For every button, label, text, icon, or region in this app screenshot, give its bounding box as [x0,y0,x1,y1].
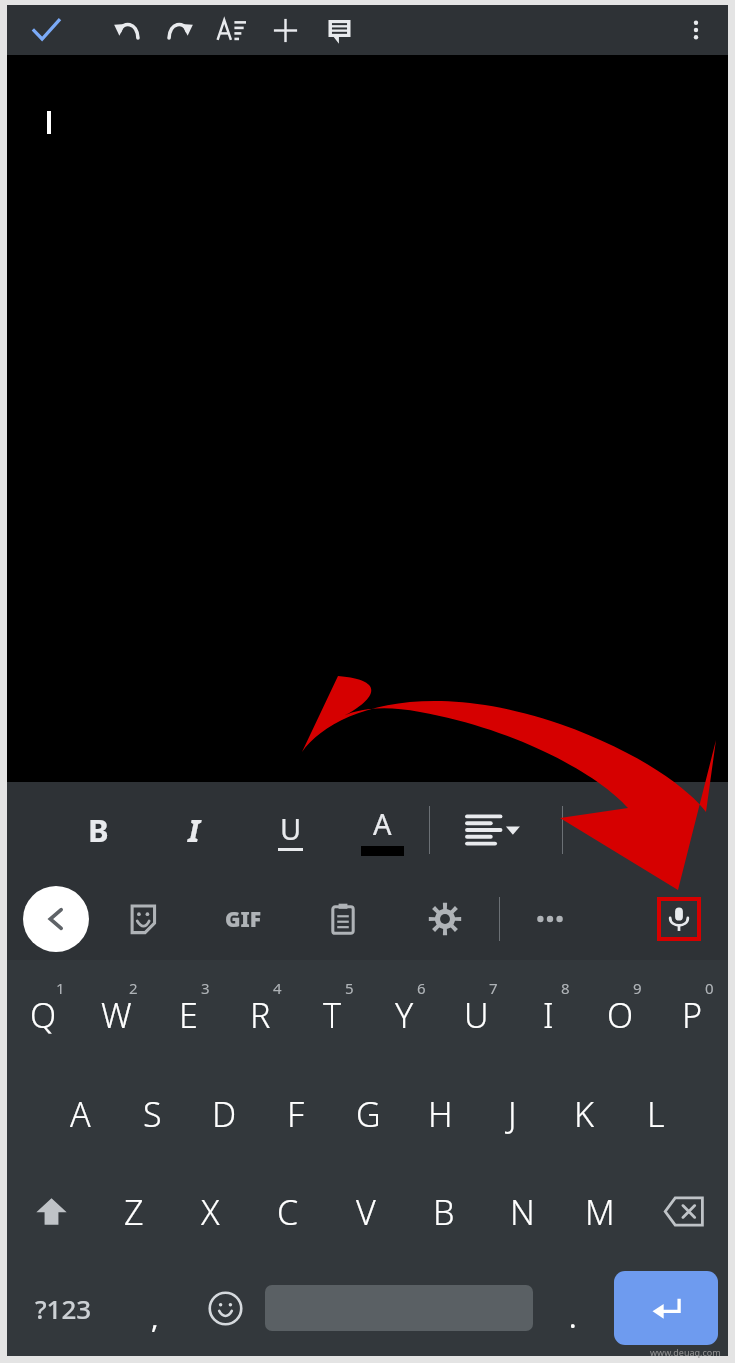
staticText: N [510,1189,535,1235]
button[interactable]: W [80,960,152,1064]
button[interactable]: GIF [215,891,271,947]
staticText: , [151,1298,159,1336]
staticText: F [287,1091,305,1137]
button[interactable]: K [548,1064,620,1163]
staticText: 8 [561,978,570,998]
staticText: Z [124,1189,144,1235]
button[interactable]: V [327,1163,405,1260]
button[interactable]: B [67,799,129,861]
button[interactable]: Done [21,5,71,55]
button[interactable]: F [260,1064,332,1163]
button[interactable]: G [332,1064,404,1163]
staticText: M [585,1189,615,1235]
button[interactable]: S [116,1064,188,1163]
button[interactable]: H [404,1064,476,1163]
staticText: GIF [225,905,262,934]
staticText: T [323,992,342,1038]
staticText: B [433,1189,455,1235]
staticText: P [682,992,703,1038]
staticText: X [201,1189,220,1235]
button[interactable]: P [656,960,728,1064]
button[interactable]: Text formatting [207,6,255,54]
staticText: S [143,1091,162,1137]
button[interactable]: D [188,1064,260,1163]
staticText: 6 [417,978,426,998]
staticText: I [543,992,554,1038]
staticText: I [188,809,200,851]
staticText: A [70,1091,91,1137]
button[interactable]: . [537,1260,608,1356]
staticText: 5 [345,978,354,998]
staticText: 3 [201,978,210,998]
button[interactable]: B [405,1163,483,1260]
button[interactable]: Emoji [190,1260,261,1356]
button[interactable]: T [296,960,368,1064]
button[interactable]: Voice input [661,901,697,937]
staticText: L [647,1091,665,1137]
button[interactable]: Backspace [639,1163,728,1260]
button[interactable]: J [476,1064,548,1163]
button[interactable]: More keyboard options [522,891,578,947]
staticText: B [88,809,109,851]
staticText: A [373,804,392,843]
staticText: U [464,992,489,1038]
button[interactable]: ?123 [7,1260,119,1356]
staticText: V [356,1189,376,1235]
staticText: W [101,992,132,1038]
button[interactable]: Shift [7,1163,95,1260]
staticText: R [250,992,271,1038]
staticText: www.deuaq.com [650,1346,721,1358]
button[interactable]: C [249,1163,327,1260]
button[interactable]: M [561,1163,639,1260]
staticText: U [280,809,302,848]
staticText: 1 [56,978,65,998]
staticText: C [277,1189,299,1235]
button[interactable]: X [172,1163,249,1260]
staticText: 7 [489,978,498,998]
button[interactable]: Enter [614,1271,718,1345]
button[interactable]: U [440,960,512,1064]
staticText: K [574,1091,594,1137]
button[interactable]: Stickers [115,891,171,947]
staticText: H [428,1091,453,1137]
button[interactable]: A [44,1064,116,1163]
button[interactable]: Comments [315,6,363,54]
button[interactable]: U [259,799,321,861]
staticText: G [356,1091,381,1137]
button[interactable]: Redo [155,6,203,54]
staticText: . [569,1298,577,1336]
button[interactable]: I [163,799,225,861]
button[interactable]: More options [674,8,718,52]
button[interactable]: Settings [417,891,473,947]
button[interactable]: I [512,960,584,1064]
staticText: ?123 [35,1291,92,1326]
button[interactable]: Back [23,886,89,952]
staticText: J [508,1091,517,1137]
button[interactable]: R [224,960,296,1064]
button[interactable]: E [152,960,224,1064]
staticText: O [607,992,634,1038]
staticText: 9 [633,978,642,998]
staticText: 4 [273,978,282,998]
button[interactable]: Clipboard [315,891,371,947]
button[interactable]: N [483,1163,561,1260]
button[interactable]: Undo [103,6,151,54]
button[interactable]: L [620,1064,692,1163]
staticText: E [179,992,198,1038]
button[interactable]: Q [7,960,80,1064]
staticText: Y [395,992,414,1038]
staticText: 0 [705,978,714,998]
button[interactable]: , [119,1260,190,1356]
staticText: 2 [129,978,138,998]
staticText: D [212,1091,237,1137]
button[interactable]: Insert [261,6,309,54]
button[interactable]: A [351,799,413,861]
button[interactable]: Z [95,1163,172,1260]
button[interactable]: Paragraph alignment [454,799,534,861]
staticText: Q [30,992,57,1038]
button[interactable]: Y [368,960,440,1064]
button[interactable]: O [584,960,656,1064]
